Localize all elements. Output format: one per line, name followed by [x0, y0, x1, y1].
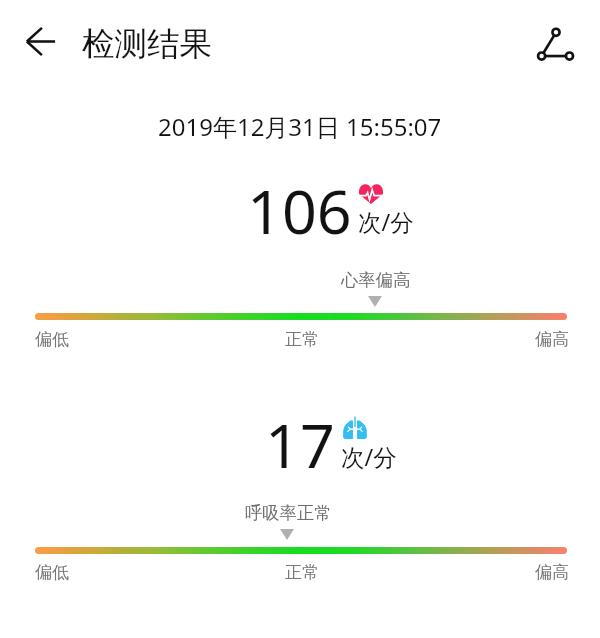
staticText: 偏低 [35, 329, 69, 350]
button[interactable]: Back [20, 21, 61, 62]
staticText: 次/分 [341, 441, 397, 473]
staticText: 偏低 [35, 562, 69, 583]
staticText: 106 [247, 169, 352, 252]
staticText: 次/分 [358, 206, 414, 238]
staticText: 偏高 [535, 562, 569, 583]
button[interactable]: 106 [0, 160, 600, 360]
staticText: 正常 [285, 329, 319, 350]
staticText: 检测结果 [82, 24, 212, 65]
button[interactable]: 17 [0, 394, 600, 594]
button[interactable]: Share [533, 22, 577, 66]
staticText: 呼吸率正常 [245, 502, 332, 524]
staticText: 正常 [285, 562, 319, 583]
staticText: 17 [265, 403, 335, 486]
staticText: 心率偏高 [341, 269, 411, 291]
staticText: 偏高 [535, 329, 569, 350]
staticText: 2019年12月31日 15:55:07 [158, 110, 442, 143]
